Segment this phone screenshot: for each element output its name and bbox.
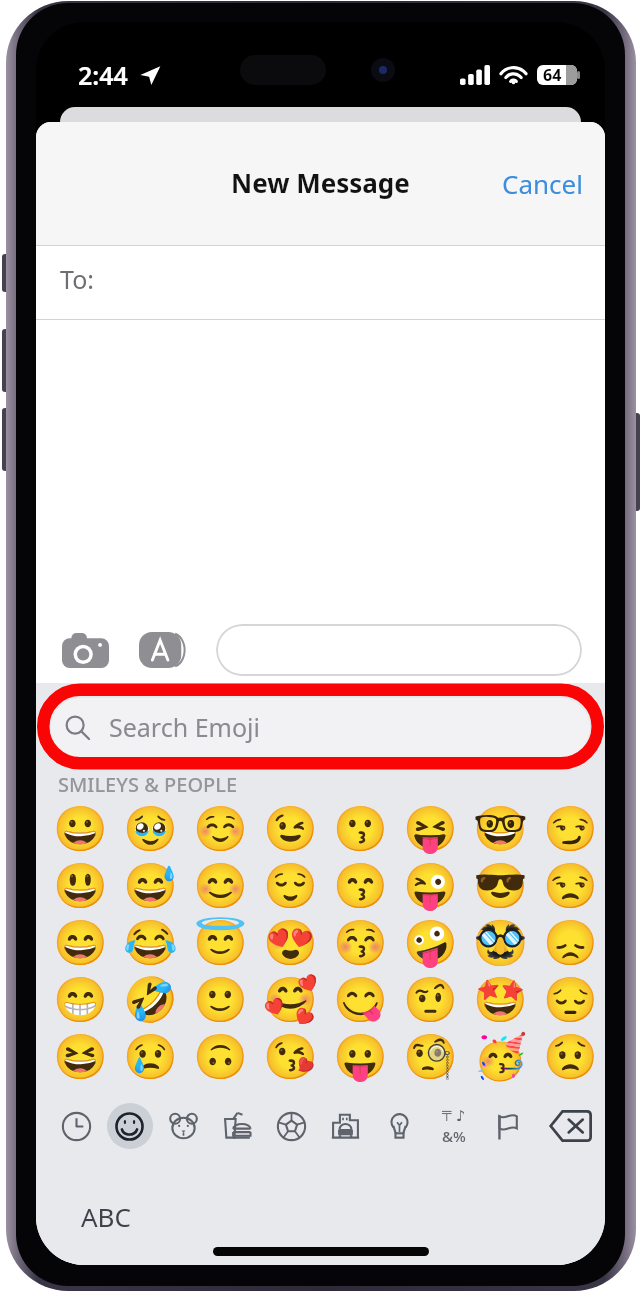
staticText: SMILEYS & PEOPLE xyxy=(58,771,238,795)
button[interactable]: 🥰 xyxy=(255,971,325,1028)
button[interactable]: 😋 xyxy=(325,971,395,1028)
button[interactable]: 😁 xyxy=(46,971,115,1028)
button[interactable]: 😃 xyxy=(46,857,115,914)
button[interactable]: 😀 xyxy=(46,800,115,857)
staticText: 😀 xyxy=(53,803,108,855)
staticText: ☺️ xyxy=(193,803,248,855)
button[interactable]: 😞 xyxy=(535,914,605,971)
button[interactable]: 🤩 xyxy=(465,971,535,1028)
button[interactable]: App store xyxy=(139,628,189,672)
button[interactable]: 😒 xyxy=(535,857,605,914)
button[interactable]: Search Emoji xyxy=(51,698,590,757)
button[interactable]: 🙂 xyxy=(185,971,255,1028)
staticText: 😏 xyxy=(543,803,598,855)
staticText: 🥹 xyxy=(123,803,178,855)
staticText: 😜 xyxy=(403,860,458,912)
button[interactable]: 😊 xyxy=(185,857,255,914)
staticText: 😌 xyxy=(263,860,318,912)
button[interactable]: 🥳 xyxy=(465,1028,535,1085)
button[interactable]: 🧐 xyxy=(395,1028,465,1085)
button[interactable]: 😇 xyxy=(185,914,255,971)
staticText: 🤓 xyxy=(473,803,528,855)
button[interactable]: 🤪 xyxy=(395,914,465,971)
staticText: To: xyxy=(60,262,94,296)
button[interactable]: Symbols xyxy=(426,1097,480,1155)
staticText: 😄 xyxy=(53,917,108,969)
staticText: 🤣 xyxy=(123,974,178,1026)
staticText: 😢 xyxy=(123,1031,178,1083)
staticText: 😃 xyxy=(53,860,108,912)
staticText: 😗 xyxy=(333,803,388,855)
button[interactable]: 😍 xyxy=(255,914,325,971)
staticText: 🙂 xyxy=(193,974,248,1026)
button[interactable]: Cancel xyxy=(480,154,605,213)
button[interactable]: 🤣 xyxy=(115,971,185,1028)
button[interactable]: 😛 xyxy=(325,1028,395,1085)
staticText: 😅 xyxy=(123,860,178,912)
button[interactable] xyxy=(216,624,582,676)
staticText: 😙 xyxy=(333,860,388,912)
button[interactable]: 😗 xyxy=(325,800,395,857)
button[interactable]: Delete xyxy=(534,1097,605,1155)
staticText: 😁 xyxy=(53,974,108,1026)
button[interactable]: ☺️ xyxy=(185,800,255,857)
staticText: 😚 xyxy=(333,917,388,969)
button[interactable]: 😘 xyxy=(255,1028,325,1085)
button[interactable]: Food and drink xyxy=(210,1097,264,1155)
button[interactable]: 😄 xyxy=(46,914,115,971)
button[interactable]: Objects xyxy=(372,1097,426,1155)
staticText: 😟 xyxy=(543,1031,598,1083)
button[interactable]: 😚 xyxy=(325,914,395,971)
staticText: 🥳 xyxy=(473,1031,528,1083)
staticText: 😎 xyxy=(473,860,528,912)
button[interactable]: 😌 xyxy=(255,857,325,914)
staticText: 😂 xyxy=(123,917,178,969)
button[interactable]: 🥹 xyxy=(115,800,185,857)
button[interactable]: Activity xyxy=(264,1097,318,1155)
staticText: 64 xyxy=(543,64,562,86)
button[interactable]: 😔 xyxy=(535,971,605,1028)
button[interactable]: Camera xyxy=(61,628,109,672)
button[interactable]: Smileys and people xyxy=(103,1097,156,1155)
staticText: 🤨 xyxy=(403,974,458,1026)
staticText: 😊 xyxy=(193,860,248,912)
button[interactable]: 😏 xyxy=(535,800,605,857)
staticText: 😆 xyxy=(53,1031,108,1083)
staticText: 😘 xyxy=(263,1031,318,1083)
staticText: 😛 xyxy=(333,1031,388,1083)
button[interactable]: 😆 xyxy=(46,1028,115,1085)
staticText: 🤩 xyxy=(473,974,528,1026)
button[interactable]: 🙃 xyxy=(185,1028,255,1085)
staticText: 🥸 xyxy=(473,917,528,969)
button[interactable]: 🤓 xyxy=(465,800,535,857)
staticText: 〒♪ xyxy=(441,1107,466,1126)
staticText: 😞 xyxy=(543,917,598,969)
button[interactable]: 😢 xyxy=(115,1028,185,1085)
button[interactable]: 😜 xyxy=(395,857,465,914)
button[interactable]: 😝 xyxy=(395,800,465,857)
button[interactable]: Animals and nature xyxy=(156,1097,210,1155)
staticText: Cancel xyxy=(502,166,583,201)
staticText: 🙃 xyxy=(193,1031,248,1083)
button[interactable]: ABC xyxy=(36,1189,155,1244)
staticText: 😒 xyxy=(543,860,598,912)
button[interactable]: 😟 xyxy=(535,1028,605,1085)
button[interactable]: 😅 xyxy=(115,857,185,914)
button[interactable]: Travel and places xyxy=(318,1097,372,1155)
staticText: 😝 xyxy=(403,803,458,855)
button[interactable]: 😂 xyxy=(115,914,185,971)
button[interactable]: 😎 xyxy=(465,857,535,914)
staticText: 🧐 xyxy=(403,1031,458,1083)
staticText: 😍 xyxy=(263,917,318,969)
staticText: 😉 xyxy=(263,803,318,855)
button[interactable]: Flags xyxy=(480,1097,534,1155)
staticText: 😇 xyxy=(193,917,248,969)
button[interactable]: 😉 xyxy=(255,800,325,857)
button[interactable]: 😙 xyxy=(325,857,395,914)
staticText: 🥰 xyxy=(263,974,318,1026)
staticText: Search Emoji xyxy=(109,710,260,744)
button[interactable]: 🥸 xyxy=(465,914,535,971)
button[interactable]: 🤨 xyxy=(395,971,465,1028)
button[interactable]: Recently used xyxy=(50,1097,103,1155)
staticText: 🤪 xyxy=(403,917,458,969)
